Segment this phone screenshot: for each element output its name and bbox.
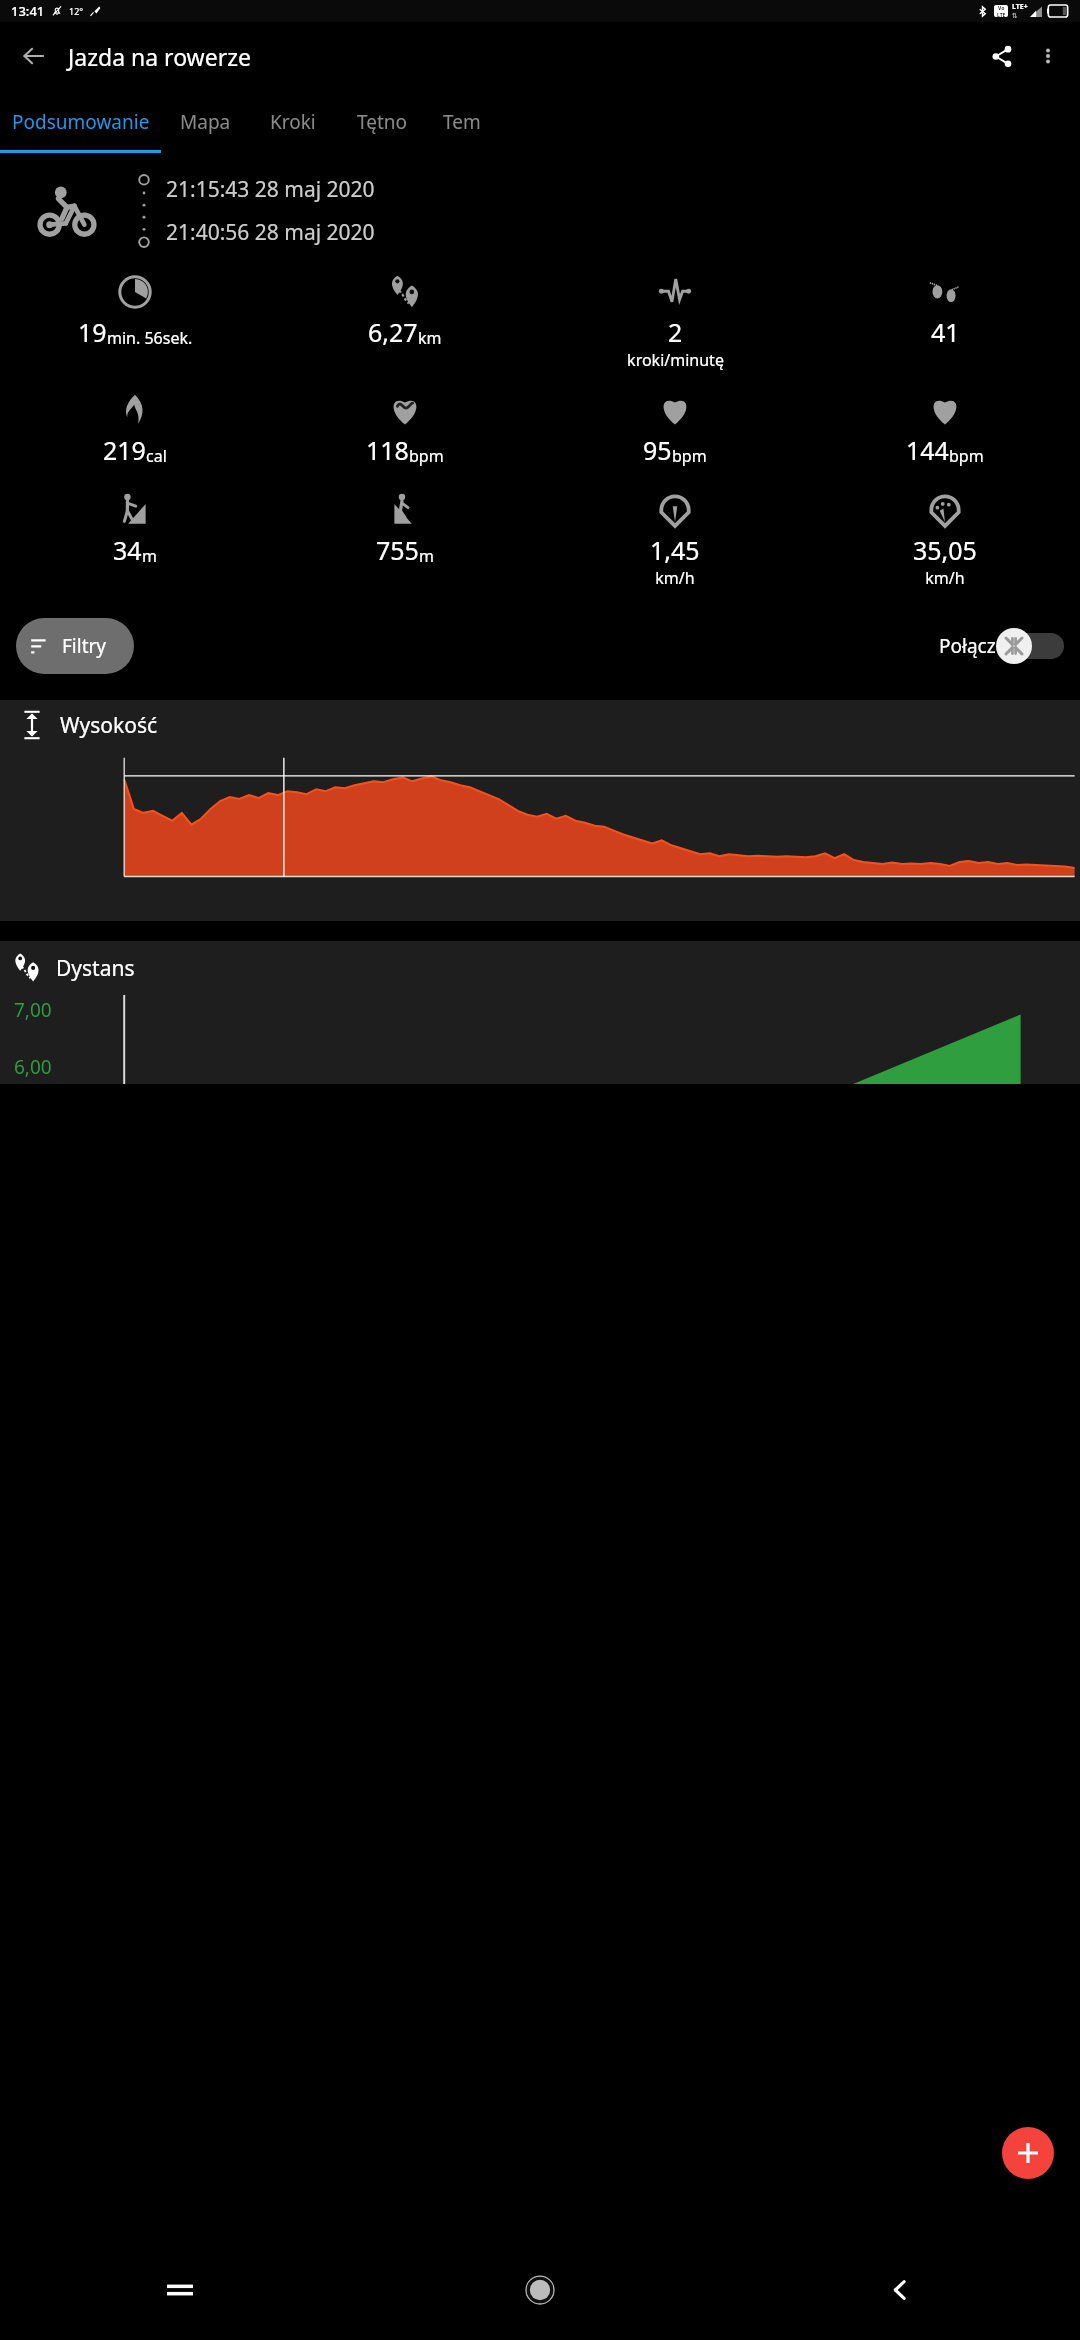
staticText: 34	[113, 533, 142, 567]
staticText: km	[418, 327, 442, 349]
staticText: Mapa	[180, 109, 231, 135]
button[interactable]: Ostatnie	[0, 2240, 360, 2340]
staticText: 7,00	[14, 997, 52, 1023]
staticText: m	[419, 545, 434, 567]
staticText: 41	[931, 315, 960, 349]
staticText: kroki/minutę	[627, 349, 724, 371]
button[interactable]: Podsumowanie	[0, 90, 161, 153]
staticText: 144	[906, 433, 949, 467]
staticText: 219	[103, 433, 146, 467]
staticText: Tętno	[357, 109, 408, 135]
staticText: 95	[643, 433, 672, 467]
staticText: 21:40:56 28 maj 2020	[166, 218, 375, 247]
staticText: cal	[146, 445, 167, 467]
staticText: km/h	[655, 567, 695, 589]
staticText: 13:41	[11, 2, 45, 20]
staticText: min. 56sek.	[107, 327, 193, 349]
staticText: 6,27	[368, 315, 418, 349]
staticText: Podsumowanie	[12, 109, 150, 135]
staticText: Filtry	[62, 633, 107, 659]
staticText: LTE+	[1012, 2, 1028, 12]
button[interactable]: Mapa	[161, 90, 249, 153]
button[interactable]: Połącz	[939, 628, 1064, 664]
staticText: 755	[376, 533, 419, 567]
button[interactable]: Tem	[427, 90, 497, 153]
button[interactable]: Dystans	[0, 941, 1080, 1084]
staticText: bpm	[409, 445, 444, 467]
button[interactable]: Kroki	[249, 90, 337, 153]
button[interactable]: Tętno	[337, 90, 427, 153]
staticText: LTE	[997, 12, 1006, 17]
staticText: Wysokość	[60, 711, 158, 740]
staticText: Dystans	[56, 954, 135, 983]
button[interactable]: Udostępnij	[978, 32, 1026, 80]
staticText: km/h	[925, 567, 965, 589]
staticText: 12°	[69, 5, 84, 17]
staticText: 118	[366, 433, 409, 467]
staticText: bpm	[672, 445, 707, 467]
staticText: bpm	[949, 445, 984, 467]
button[interactable]: Wysokość	[0, 700, 1080, 921]
staticText: Jazda na rowerze	[68, 41, 251, 72]
staticText: 1,45	[650, 533, 700, 567]
staticText: Tem	[443, 109, 481, 135]
staticText: 19	[78, 315, 107, 349]
staticText: 6,00	[14, 1054, 52, 1080]
staticText: Kroki	[270, 109, 316, 135]
staticText: 21:15:43 28 maj 2020	[166, 175, 375, 204]
button[interactable]: Filtry	[16, 618, 134, 674]
button[interactable]: Dodaj	[1002, 2127, 1054, 2179]
staticText: 35,05	[913, 533, 977, 567]
button[interactable]: Więcej opcji	[1026, 34, 1070, 78]
staticText: Połącz	[939, 633, 996, 659]
staticText: ⇅	[1012, 12, 1018, 20]
staticText: m	[142, 545, 157, 567]
button[interactable]: Ekran główny	[360, 2240, 720, 2340]
button[interactable]: Wstecz	[10, 32, 58, 80]
staticText: Vo	[998, 5, 1005, 12]
button[interactable]: Wstecz	[720, 2240, 1080, 2340]
staticText: 2	[668, 315, 683, 349]
